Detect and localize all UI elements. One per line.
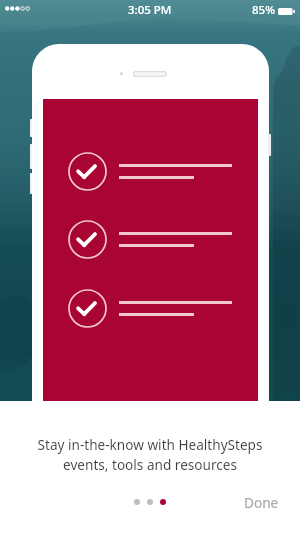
staticText: Done <box>244 493 279 512</box>
staticText: 85% <box>252 2 275 18</box>
button[interactable]: Done <box>238 489 285 516</box>
staticText: 3:05 PM <box>128 2 172 18</box>
staticText: Stay in-the-know with HealthySteps event… <box>0 435 300 474</box>
